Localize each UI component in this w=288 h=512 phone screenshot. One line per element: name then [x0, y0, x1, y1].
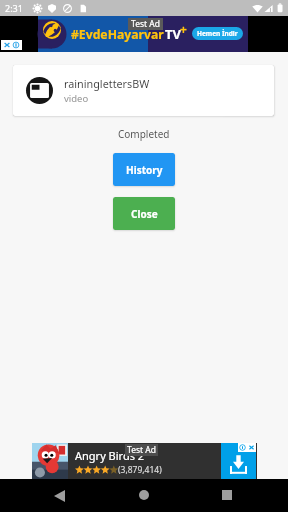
button[interactable]: Ad info — [12, 41, 20, 49]
staticText: History — [126, 163, 163, 177]
staticText: Completed — [118, 127, 170, 141]
staticText: Angry Birds 2 — [75, 448, 145, 463]
staticText: Test Ad — [127, 444, 156, 456]
staticText: #EvdeHayarvar — [71, 26, 164, 43]
button[interactable]: raininglettersBW — [13, 65, 274, 116]
staticText: video — [64, 92, 89, 105]
staticText: Hemen İndir — [197, 29, 238, 38]
staticText: + — [180, 21, 187, 37]
staticText: TV — [165, 25, 181, 43]
button[interactable]: Close ad — [3, 41, 11, 49]
staticText: Test Ad — [131, 18, 160, 30]
staticText: raininglettersBW — [64, 76, 150, 91]
button[interactable]: Back — [54, 490, 65, 502]
button[interactable]: Hemen İndir — [192, 27, 243, 40]
button[interactable]: Angry Birds 2 — [32, 443, 257, 479]
button[interactable]: Home — [139, 490, 149, 500]
staticText: 2:31 — [5, 2, 23, 14]
button[interactable]: #EvdeHayarvar — [38, 16, 248, 52]
button[interactable]: Close — [113, 197, 175, 230]
staticText: Close — [131, 207, 158, 221]
button[interactable]: Install app — [221, 443, 256, 479]
button[interactable]: History — [113, 153, 175, 186]
staticText: (3,879,414) — [118, 464, 162, 476]
